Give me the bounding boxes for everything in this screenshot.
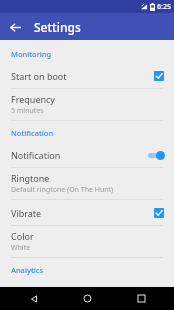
staticText: Default ringtone (On The Hunt) xyxy=(11,185,114,195)
button[interactable]: Home xyxy=(67,287,107,310)
button[interactable]: Start on boot xyxy=(0,63,174,88)
staticText: Vibrate xyxy=(11,207,154,219)
staticText: Settings xyxy=(34,19,81,35)
button[interactable]: Back xyxy=(5,17,25,37)
button[interactable]: Color xyxy=(0,226,174,257)
staticText: Notification xyxy=(11,149,147,161)
staticText: Notification xyxy=(11,128,54,138)
button[interactable]: Recent apps xyxy=(121,287,161,310)
staticText: Start on boot xyxy=(11,70,154,82)
staticText: Color xyxy=(11,230,34,242)
button[interactable]: Frequency xyxy=(0,89,174,120)
button[interactable]: Vibrate xyxy=(0,200,174,225)
staticText: Monitoring xyxy=(11,49,52,59)
button[interactable]: Notification xyxy=(0,142,174,167)
staticText: Frequency xyxy=(11,93,55,105)
staticText: Analytics xyxy=(11,265,44,275)
staticText: 6:25 xyxy=(157,2,171,12)
button[interactable]: Back xyxy=(14,287,54,310)
button[interactable]: Ringtone xyxy=(0,168,174,199)
staticText: 5 minutes xyxy=(11,106,44,116)
staticText: White xyxy=(11,243,31,253)
staticText: Ringtone xyxy=(11,172,50,184)
